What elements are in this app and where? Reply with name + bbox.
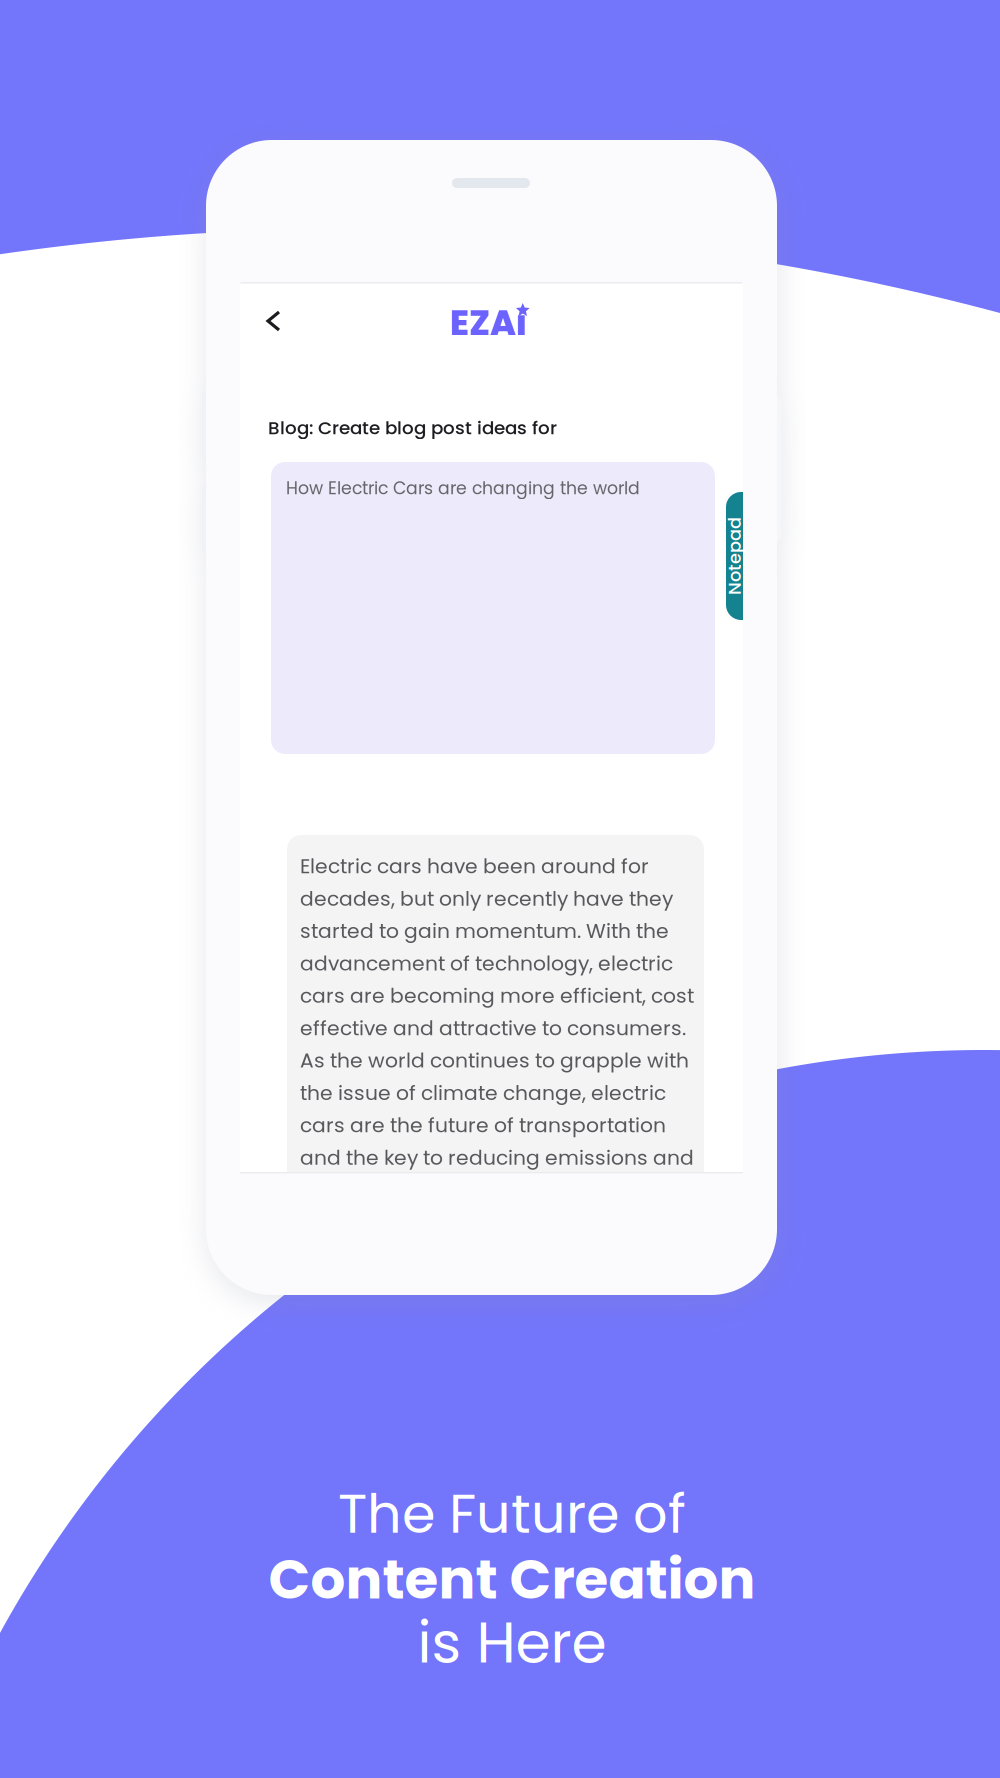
staticText: EZAi [450, 299, 527, 347]
staticText: Content Creation [268, 1541, 755, 1617]
staticText: The Future of [338, 1476, 686, 1552]
staticText: How Electric Cars are changing the world [286, 476, 640, 500]
staticText: is Here [417, 1603, 606, 1682]
button[interactable]: Back [252, 298, 297, 346]
staticText: Electric cars have been around for decad… [300, 852, 694, 1172]
staticText: Blog: Create blog post ideas for [268, 415, 557, 441]
button[interactable]: Notepad [726, 492, 743, 620]
staticText: Notepad [695, 544, 773, 568]
